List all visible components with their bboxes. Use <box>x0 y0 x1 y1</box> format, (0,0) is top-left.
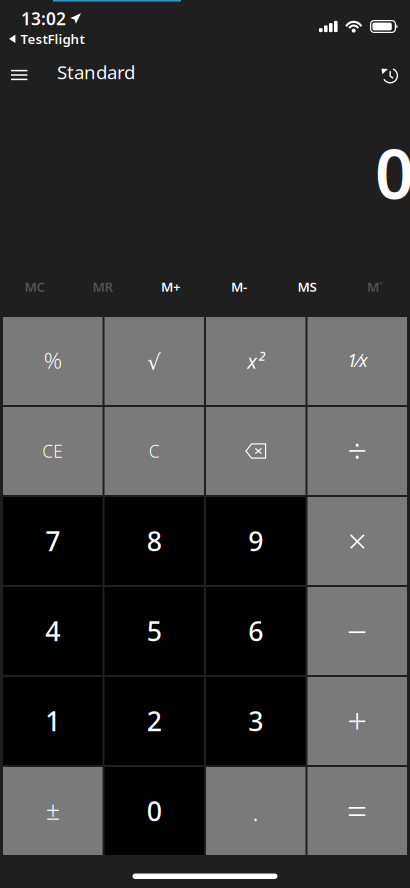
staticText: 9 <box>248 523 263 559</box>
staticText: 7 <box>45 523 60 559</box>
staticText: 2 <box>147 703 162 739</box>
button[interactable]: 0 <box>104 767 204 855</box>
button[interactable]: 1⁄x <box>307 317 407 405</box>
button[interactable]: 3 <box>206 677 305 765</box>
button[interactable]: . <box>206 767 305 855</box>
staticText: Standard <box>57 60 135 84</box>
button[interactable]: 4 <box>3 587 102 675</box>
staticText: M- <box>231 278 247 295</box>
button[interactable]: % <box>3 317 102 405</box>
button[interactable]: MC <box>1 266 69 314</box>
staticText: 1⁄x <box>347 349 367 372</box>
staticText: . <box>252 793 259 829</box>
staticText: CE <box>42 439 63 462</box>
staticText: 5 <box>147 613 162 649</box>
staticText: 0 <box>375 127 410 218</box>
button[interactable]: CE <box>3 407 102 495</box>
staticText: ÷ <box>347 427 367 473</box>
button[interactable]: History <box>354 52 410 98</box>
staticText: MR <box>92 278 113 295</box>
staticText: × <box>348 518 367 562</box>
button[interactable]: 6 <box>206 587 305 675</box>
staticText: M+ <box>161 278 181 295</box>
button[interactable]: MS <box>273 266 341 314</box>
button[interactable]: 2 <box>104 677 204 765</box>
button[interactable]: 9 <box>206 497 305 585</box>
button[interactable]: C <box>104 407 204 495</box>
button[interactable]: M˅ <box>341 266 409 314</box>
staticText: − <box>347 607 368 655</box>
button[interactable]: 5 <box>104 587 204 675</box>
button[interactable]: √ <box>104 317 204 405</box>
button[interactable]: Backspace <box>206 407 305 495</box>
button[interactable]: M+ <box>137 266 205 314</box>
button[interactable]: 8 <box>104 497 204 585</box>
button[interactable]: + <box>307 677 407 765</box>
staticText: 13:02 <box>21 7 66 30</box>
button[interactable]: × <box>307 497 407 585</box>
button[interactable]: MR <box>69 266 137 314</box>
button[interactable]: ± <box>3 767 102 855</box>
staticText: C <box>149 439 160 462</box>
button[interactable]: Menu <box>0 52 49 98</box>
staticText: 1 <box>45 703 60 739</box>
staticText: 6 <box>248 613 263 649</box>
button[interactable]: x² <box>206 317 305 405</box>
staticText: 8 <box>147 523 162 559</box>
staticText: + <box>347 697 367 743</box>
staticText: M˅ <box>367 278 383 295</box>
staticText: 0 <box>147 793 162 829</box>
button[interactable]: = <box>307 767 407 855</box>
button[interactable]: − <box>307 587 407 675</box>
staticText: % <box>44 345 62 375</box>
staticText: 4 <box>45 613 60 649</box>
button[interactable]: ÷ <box>307 407 407 495</box>
staticText: MS <box>297 278 316 295</box>
staticText: MC <box>24 278 45 295</box>
staticText: √ <box>147 350 161 374</box>
staticText: x² <box>247 348 264 374</box>
button[interactable]: M- <box>205 266 273 314</box>
button[interactable]: 7 <box>3 497 102 585</box>
staticText: ± <box>46 793 60 827</box>
staticText: 3 <box>248 703 263 739</box>
staticText: TestFlight <box>20 30 84 48</box>
staticText: = <box>347 786 368 834</box>
button[interactable]: 1 <box>3 677 102 765</box>
